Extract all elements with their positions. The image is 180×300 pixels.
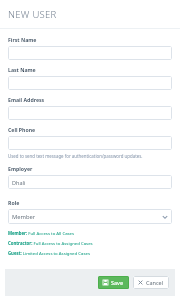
staticText: Used to send text message for authentica… <box>8 153 143 159</box>
staticText: NEW USER <box>8 8 57 21</box>
staticText: Guest: Limited Access to Assigned Cases <box>8 250 90 256</box>
staticText: Employer <box>8 165 33 172</box>
button[interactable] <box>8 106 172 120</box>
button[interactable] <box>8 136 172 150</box>
button[interactable]: Member <box>8 209 172 224</box>
button[interactable]: Save <box>98 276 129 289</box>
staticText: Role <box>8 199 20 206</box>
staticText: Cell Phone <box>8 126 36 133</box>
button[interactable] <box>8 76 172 90</box>
button[interactable] <box>8 46 172 60</box>
button[interactable]: Dhali <box>8 175 172 189</box>
staticText: First Name <box>8 36 37 43</box>
staticText: Member: Full Access to All Cases <box>8 230 75 236</box>
staticText: Save <box>111 279 124 286</box>
staticText: Member <box>12 213 36 221</box>
staticText: Email Address <box>8 96 45 103</box>
staticText: Contractor: Full Access to Assigned Case… <box>8 240 93 246</box>
staticText: Cancel <box>146 279 164 286</box>
button[interactable]: Cancel <box>133 276 169 289</box>
staticText: Last Name <box>8 66 36 73</box>
staticText: Dhali <box>12 179 26 186</box>
